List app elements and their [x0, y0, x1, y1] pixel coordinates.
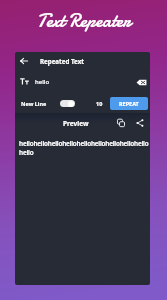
- button[interactable]: Clear text: [134, 75, 148, 89]
- button[interactable]: REPEAT: [110, 97, 148, 110]
- button[interactable]: New line toggle: [60, 100, 75, 107]
- button[interactable]: Copy: [114, 116, 128, 130]
- staticText: Text Repeater: [37, 8, 131, 34]
- staticText: REPEAT: [119, 100, 139, 107]
- staticText: New Line: [21, 100, 47, 107]
- button[interactable]: Back: [16, 53, 32, 69]
- staticText: Repeated Text: [40, 57, 84, 65]
- staticText: hello: [35, 78, 50, 86]
- staticText: hellohellohellohellohellohellohellohello…: [19, 139, 149, 157]
- staticText: 10: [96, 100, 103, 107]
- staticText: Preview: [63, 119, 89, 128]
- button[interactable]: Share: [133, 116, 147, 130]
